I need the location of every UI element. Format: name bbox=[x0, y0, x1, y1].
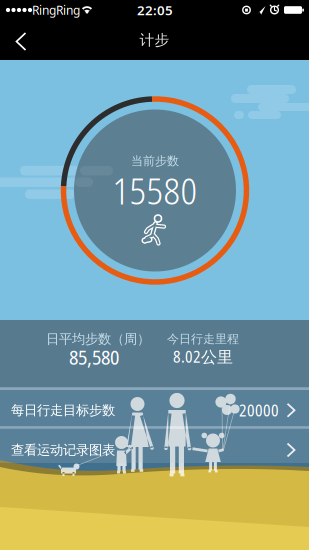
staticText: 22:05 bbox=[137, 1, 173, 19]
staticText: 15580 bbox=[112, 166, 197, 215]
staticText: RingRing bbox=[32, 2, 80, 18]
staticText: 当前步数 bbox=[131, 154, 179, 168]
staticText: 今日行走里程 bbox=[167, 332, 239, 346]
button[interactable]: Back bbox=[5, 21, 37, 61]
staticText: 计步 bbox=[139, 31, 169, 49]
staticText: 20000 bbox=[239, 399, 279, 421]
staticText: 每日行走目标步数 bbox=[11, 402, 115, 418]
staticText: 日平均步数（周） bbox=[46, 331, 150, 347]
staticText: 85,580 bbox=[69, 343, 119, 371]
staticText: 8.02公里 bbox=[173, 346, 233, 367]
button[interactable]: 查看运动记录图表 bbox=[0, 429, 309, 463]
button[interactable]: 每日行走目标步数 bbox=[0, 389, 309, 426]
staticText: 查看运动记录图表 bbox=[11, 442, 115, 458]
